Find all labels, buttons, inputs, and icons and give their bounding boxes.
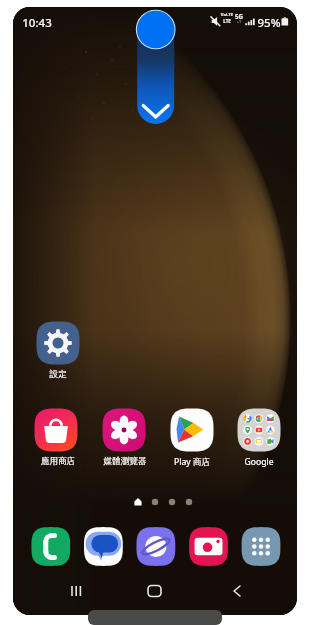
staticText: 媒體瀏覽器 [85, 456, 165, 467]
staticText: 設定 [18, 369, 98, 380]
staticText: 10:43 [7, 15, 67, 31]
staticText: 應用商店 [18, 456, 98, 467]
staticText: +T [231, 19, 247, 24]
staticText: Google [219, 456, 299, 468]
staticText: Play 商店 [152, 456, 232, 468]
staticText: 95% [249, 15, 289, 31]
staticText: 5G [231, 12, 247, 20]
staticText: VoLTE [217, 12, 237, 18]
staticText: LTE [217, 18, 237, 24]
